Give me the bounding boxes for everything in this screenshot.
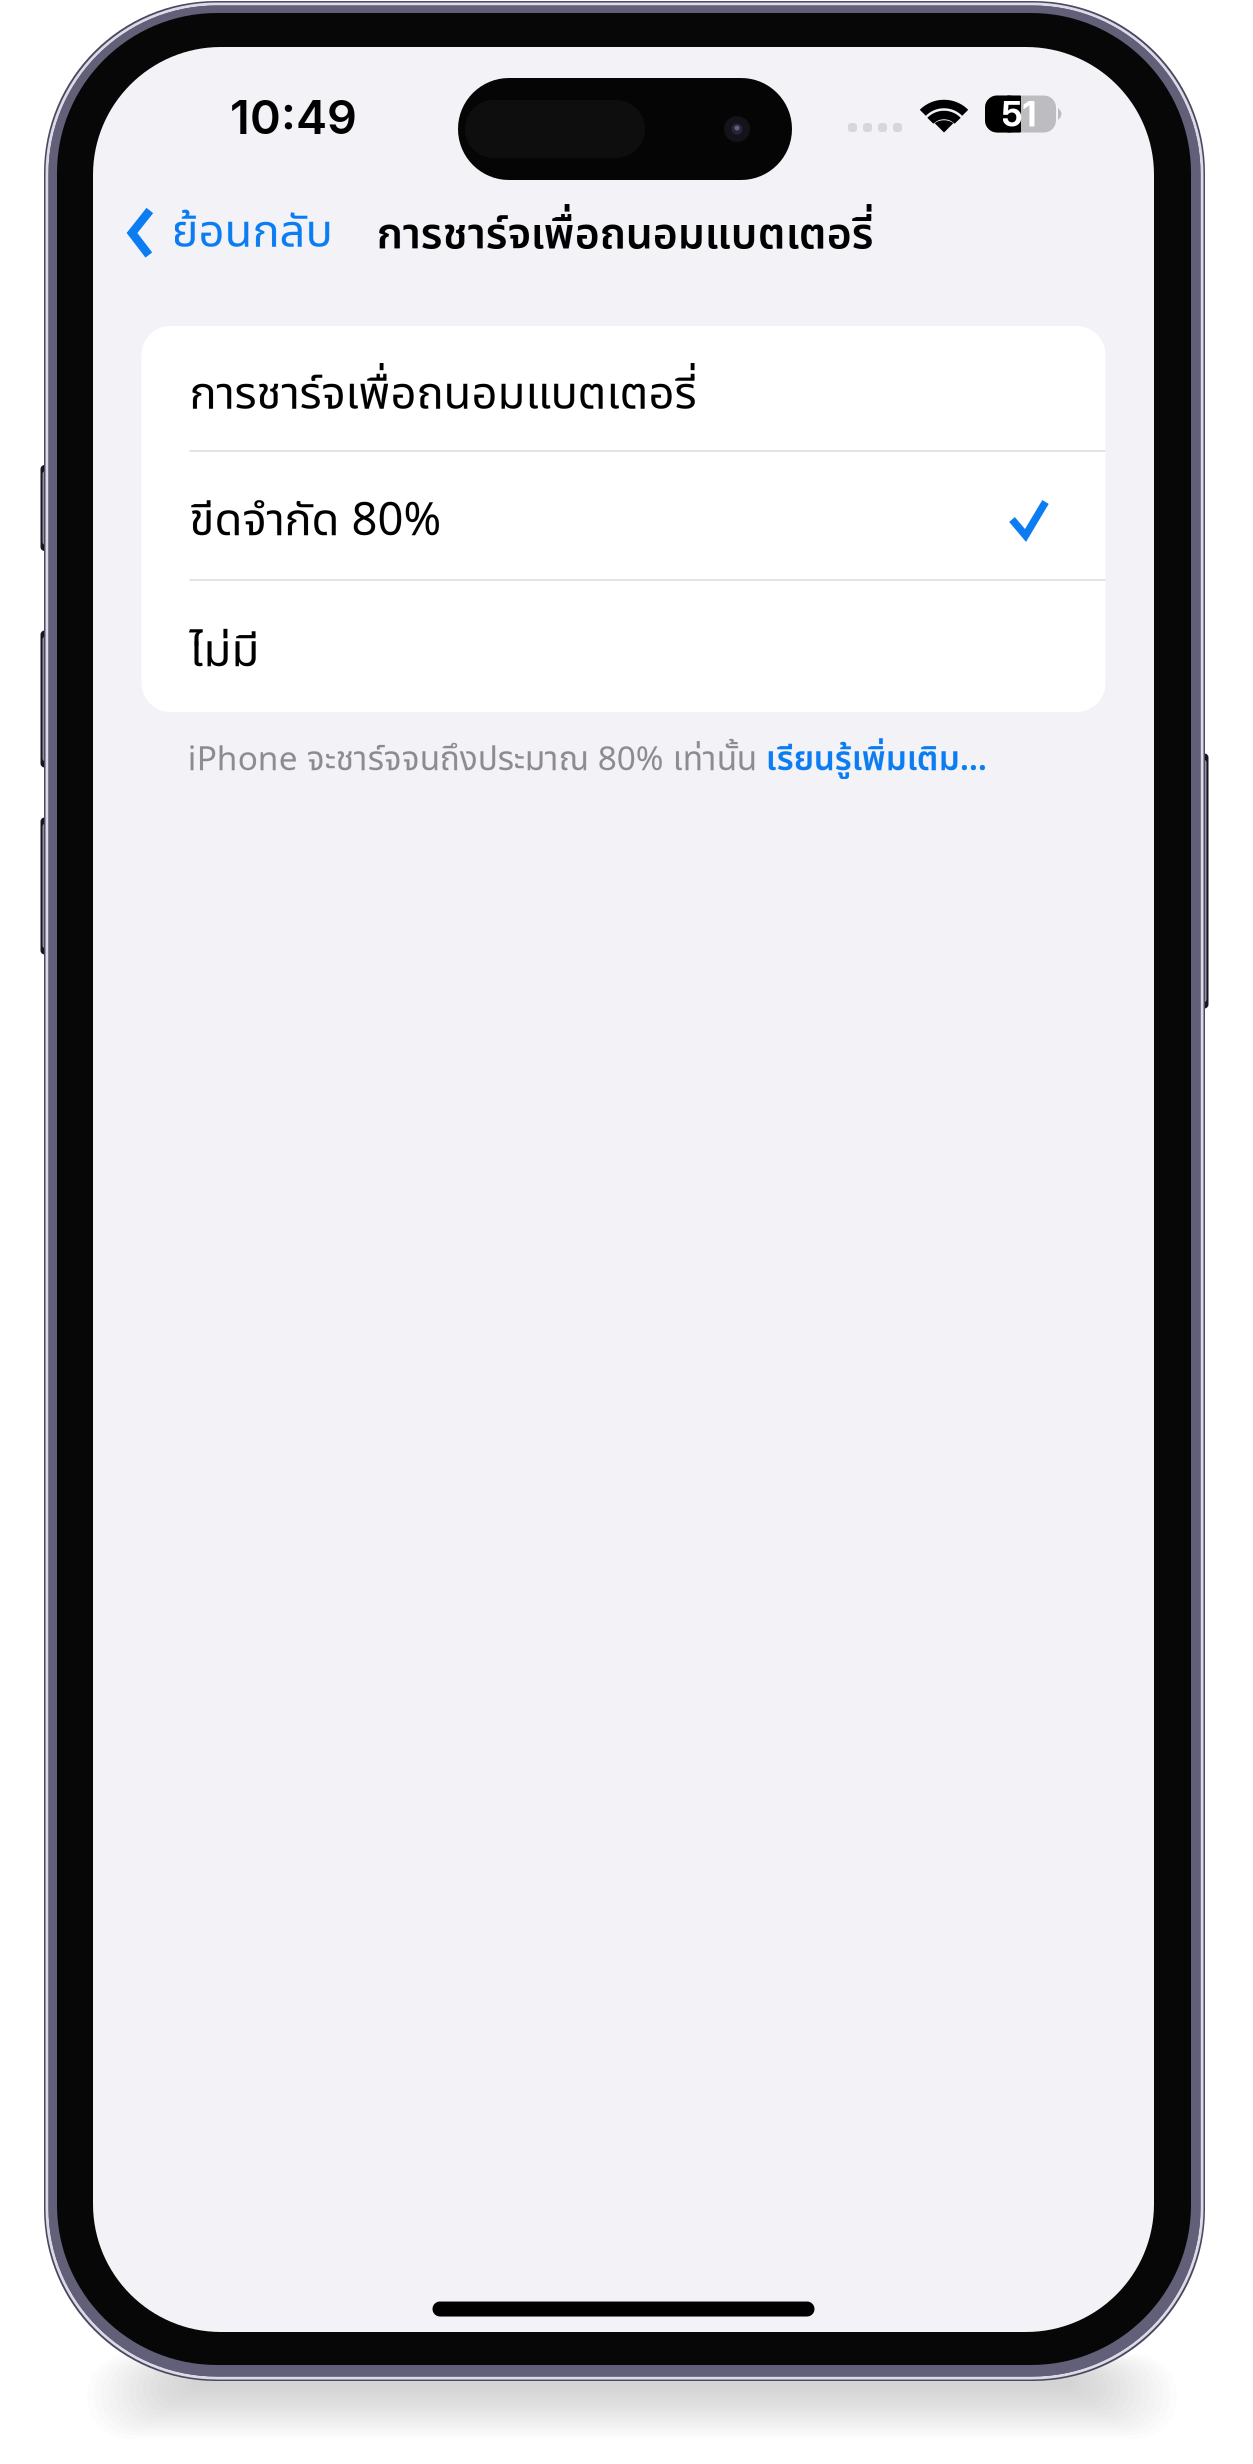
button[interactable]: ย้อนกลับ	[117, 187, 342, 279]
staticText: 51	[1001, 93, 1036, 135]
staticText: เรียนรู้เพิ่มเติม...	[766, 735, 987, 785]
button[interactable]: ขีดจำกัด 80%	[141, 452, 1105, 579]
button[interactable]: ไม่มี	[141, 581, 1105, 712]
staticText: การชาร์จเพื่อถนอมแบตเตอรี่	[189, 361, 696, 429]
button[interactable]: เรียนรู้เพิ่มเติม...	[766, 735, 987, 785]
staticText: ไม่มี	[189, 618, 259, 687]
staticText: iPhone จะชาร์จจนถึงประมาณ 80% เท่านั้น	[188, 735, 766, 785]
staticText: 10:49	[230, 89, 357, 145]
staticText: การชาร์จเพื่อถนอมแบตเตอรี่	[377, 203, 874, 267]
button[interactable]: การชาร์จเพื่อถนอมแบตเตอรี่	[141, 326, 1105, 450]
staticText: ย้อนกลับ	[171, 199, 332, 267]
staticText: ขีดจำกัด 80%	[189, 487, 441, 556]
